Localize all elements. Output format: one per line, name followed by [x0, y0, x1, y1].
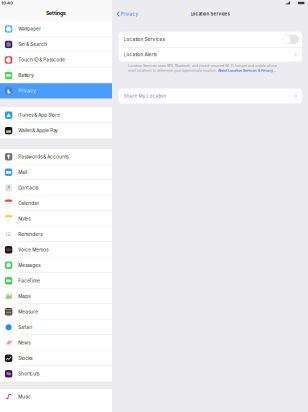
staticText: Location Services: [124, 37, 165, 42]
staticText: FaceTime: [18, 278, 40, 283]
staticText: Passwords & Accounts: [18, 154, 68, 159]
staticText: Voice Memos: [18, 247, 48, 252]
button[interactable]: Location Alerts: [119, 48, 302, 62]
button[interactable]: Music: [0, 389, 112, 404]
staticText: Share My Location: [124, 93, 167, 99]
button[interactable]: Mail: [0, 164, 112, 180]
button[interactable]: Measure: [0, 304, 112, 319]
staticText: Stocks: [18, 355, 32, 361]
staticText: Shortcuts: [18, 371, 39, 376]
button[interactable]: Calendar: [0, 195, 112, 211]
staticText: Music: [18, 394, 31, 399]
button[interactable]: Stocks: [0, 350, 112, 366]
button[interactable]: Reminders: [0, 226, 112, 242]
button[interactable]: Wallet & Apple Pay: [0, 123, 112, 138]
button[interactable]: Privacy: [112, 9, 141, 19]
staticText: Mail: [18, 169, 27, 175]
staticText: Maps: [18, 293, 30, 299]
button[interactable]: Touch ID & Passcode: [0, 52, 112, 68]
staticText: 10:40: [1, 1, 13, 5]
staticText: Battery: [18, 73, 34, 78]
staticText: Touch ID & Passcode: [18, 57, 65, 63]
staticText: Notes: [18, 216, 30, 221]
staticText: Wallet & Apple Pay: [18, 128, 58, 133]
button[interactable]: Shortcuts: [0, 366, 112, 381]
staticText: Privacy: [18, 88, 36, 94]
button[interactable]: News: [0, 335, 112, 350]
staticText: News: [18, 340, 30, 345]
staticText: Safari: [18, 324, 32, 330]
button[interactable]: Passwords & Accounts: [0, 149, 112, 164]
staticText: Messages: [18, 262, 40, 268]
button[interactable]: About Location Services & Privacy...: [218, 68, 276, 72]
staticText: Location Services: [190, 11, 229, 17]
staticText: Contacts: [18, 185, 38, 190]
button[interactable]: Voice Memos: [0, 242, 112, 257]
button[interactable]: Maps: [0, 288, 112, 304]
staticText: iTunes & App Store: [18, 112, 60, 118]
staticText: Wallpaper: [18, 26, 41, 32]
staticText: About Location Services & Privacy...: [218, 68, 276, 72]
button[interactable]: Messages: [0, 257, 112, 273]
button[interactable]: FaceTime: [0, 273, 112, 288]
staticText: Siri & Search: [18, 42, 47, 47]
button[interactable]: Battery: [0, 68, 112, 83]
button[interactable]: iTunes & App Store: [0, 107, 112, 123]
button[interactable]: Safari: [0, 319, 112, 335]
staticText: Location Alerts: [124, 52, 157, 57]
button[interactable]: Notes: [0, 211, 112, 226]
staticText: mast locations to determine your approxi…: [128, 68, 218, 72]
button[interactable]: Privacy: [0, 83, 112, 99]
staticText: Measure: [18, 309, 38, 314]
button[interactable]: Share My Location: [119, 89, 302, 103]
staticText: Privacy: [120, 11, 138, 17]
staticText: Location Services uses GPS, Bluetooth, a…: [128, 64, 277, 68]
staticText: Calendar: [18, 200, 39, 206]
button[interactable]: Wallpaper: [0, 21, 112, 37]
staticText: Settings: [46, 10, 66, 16]
staticText: Reminders: [18, 231, 42, 237]
button[interactable]: Siri & Search: [0, 37, 112, 52]
button[interactable]: Contacts: [0, 180, 112, 195]
